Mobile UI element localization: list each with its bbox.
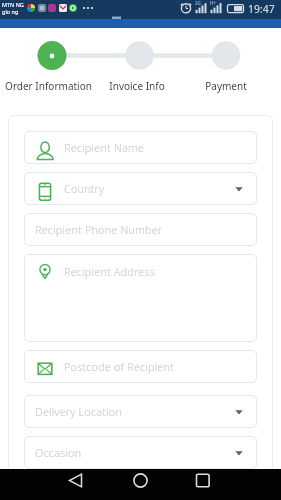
staticText: Recipient Phone Number: [35, 222, 243, 237]
staticText: Occasion: [35, 445, 235, 460]
staticText: 2G: [195, 0, 201, 6]
staticText: Delivery Location: [35, 404, 235, 419]
staticText: glo ng: [2, 8, 19, 15]
button[interactable]: Recipient Address: [24, 254, 257, 342]
staticText: 19:47: [248, 2, 275, 16]
button[interactable]: Recipient Name: [24, 131, 257, 164]
button[interactable]: Occasion: [24, 436, 257, 469]
staticText: Recipient Name: [64, 140, 243, 155]
button[interactable]: Delivery Location: [24, 395, 257, 428]
button[interactable]: Payment: [190, 79, 262, 93]
button[interactable]: [56, 469, 96, 500]
staticText: MTN NG: [2, 1, 24, 8]
button[interactable]: [182, 469, 222, 500]
staticText: Country: [64, 181, 235, 196]
button[interactable]: Order Information: [2, 79, 94, 93]
staticText: Recipient Address: [64, 264, 155, 279]
button[interactable]: Postcode of Recipient: [24, 350, 257, 383]
staticText: Postcode of Recipient: [64, 359, 243, 374]
staticText: H+: [210, 0, 216, 6]
button[interactable]: Country: [24, 172, 257, 205]
staticText: Payment: [205, 79, 247, 93]
button[interactable]: [120, 469, 160, 500]
staticText: Order Information: [5, 79, 92, 93]
button[interactable]: Recipient Phone Number: [24, 213, 257, 246]
staticText: Invoice Info: [109, 79, 165, 93]
button[interactable]: Invoice Info: [101, 79, 173, 93]
